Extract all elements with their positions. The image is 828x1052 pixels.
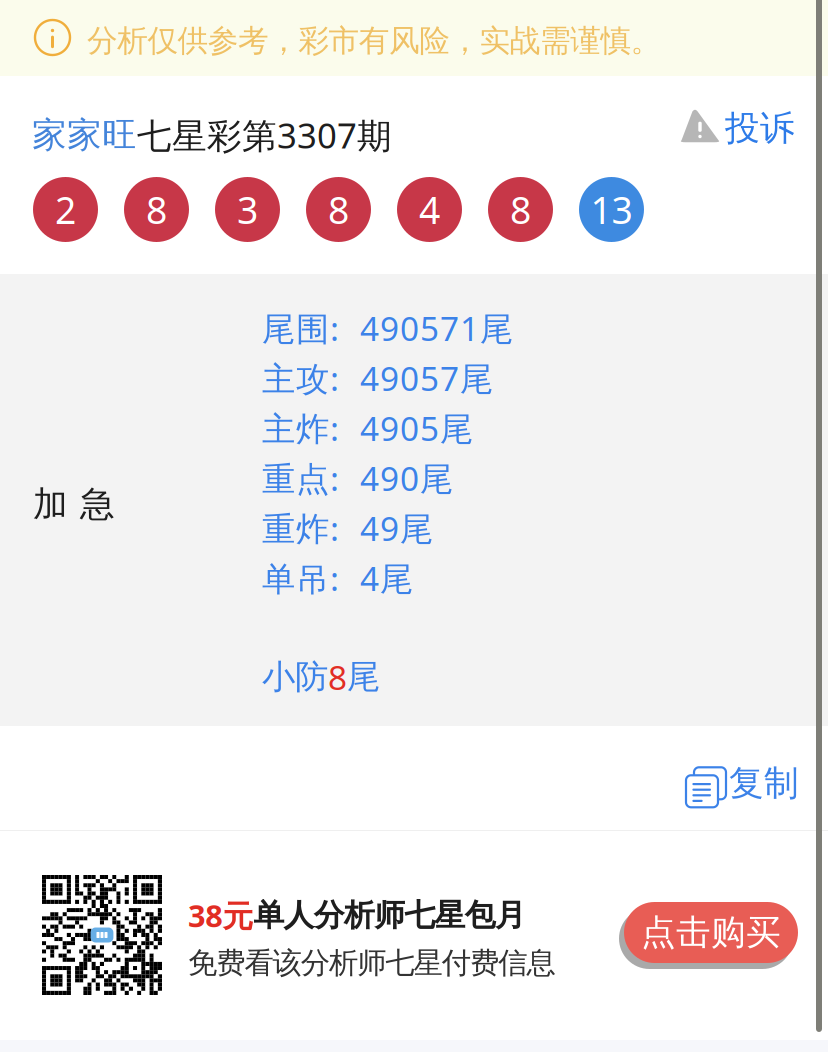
staticText: 13 xyxy=(590,185,632,234)
staticText: 主炸: 4905尾 xyxy=(262,406,473,450)
staticText: 4 xyxy=(419,185,440,234)
staticText: 38元 xyxy=(188,895,253,936)
button[interactable]: 投诉 xyxy=(678,107,795,150)
staticText: 尾围: 490571尾 xyxy=(262,306,513,350)
staticText: 家家旺 xyxy=(32,114,137,156)
staticText: 单人分析师七星包月 xyxy=(253,896,526,934)
staticText: 七星彩第3307期 xyxy=(137,112,392,158)
staticText: 主攻: 49057尾 xyxy=(262,356,493,400)
staticText: 点击购买 xyxy=(641,911,781,954)
staticText: 尾 xyxy=(347,656,380,697)
staticText: 8 xyxy=(328,185,349,234)
staticText: 8 xyxy=(328,655,347,699)
staticText: 复制 xyxy=(729,762,799,805)
staticText: 免费看该分析师七星付费信息 xyxy=(188,945,555,981)
staticText: 分析仅供参考，彩市有风险，实战需谨慎。 xyxy=(87,22,662,60)
button[interactable]: 点击购买 xyxy=(619,896,803,969)
staticText: 2 xyxy=(55,185,76,234)
staticText: 加 急 xyxy=(33,483,115,526)
staticText: 3 xyxy=(237,185,258,234)
staticText: 8 xyxy=(146,185,167,234)
staticText: 单吊: 4尾 xyxy=(262,556,413,600)
staticText: 8 xyxy=(510,185,531,234)
staticText: 投诉 xyxy=(725,107,795,150)
button[interactable]: 复制 xyxy=(682,762,799,805)
staticText: 重炸: 49尾 xyxy=(262,506,433,550)
staticText: 小防 xyxy=(262,656,328,697)
staticText: 重点: 490尾 xyxy=(262,456,453,500)
